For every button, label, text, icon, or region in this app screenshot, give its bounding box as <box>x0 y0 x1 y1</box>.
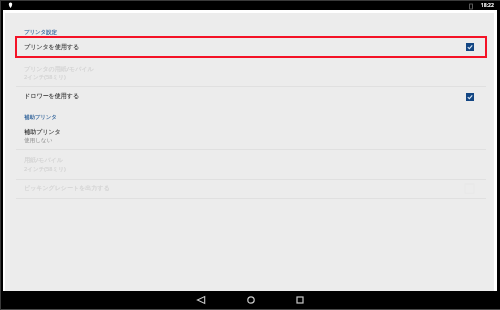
button[interactable] <box>5 87 494 107</box>
button[interactable]: Checkbox <box>466 93 474 101</box>
button[interactable]: プリンタを使用する <box>24 43 79 51</box>
button[interactable]: プリンタの用紙/モバイル <box>24 65 94 73</box>
button[interactable]: ピッキングレシートを出力する <box>24 184 110 192</box>
staticText: ドロワーを使用する <box>24 92 79 100</box>
button[interactable]: Back <box>184 291 218 308</box>
button[interactable]: ドロワーを使用する <box>24 92 79 100</box>
button[interactable]: プリンタ設定 <box>24 29 57 36</box>
staticText: 補助プリンタ <box>24 128 61 136</box>
button[interactable]: Checkbox <box>466 43 474 51</box>
staticText: 18:22 <box>481 2 494 9</box>
button[interactable]: 補助プリンタ <box>24 128 61 136</box>
button[interactable] <box>5 121 494 149</box>
button[interactable]: Home <box>234 291 268 308</box>
button[interactable]: 用紙/モバイル <box>24 156 63 164</box>
staticText: プリンタの用紙/モバイル <box>24 65 94 73</box>
staticText: 2インチ(58ミリ) <box>24 73 66 81</box>
staticText: ピッキングレシートを出力する <box>24 184 110 192</box>
staticText: プリンタを使用する <box>24 43 79 51</box>
button[interactable]: Highlighted setting <box>16 37 486 57</box>
button[interactable] <box>5 37 494 57</box>
staticText: 補助プリンタ <box>24 114 57 121</box>
button[interactable]: Recents <box>283 291 317 308</box>
button[interactable]: 補助プリンタ <box>24 114 57 121</box>
staticText: 使用しない <box>24 137 53 144</box>
staticText: 2インチ(58ミリ) <box>24 165 66 173</box>
staticText: プリンタ設定 <box>24 29 57 36</box>
staticText: 用紙/モバイル <box>24 156 63 164</box>
